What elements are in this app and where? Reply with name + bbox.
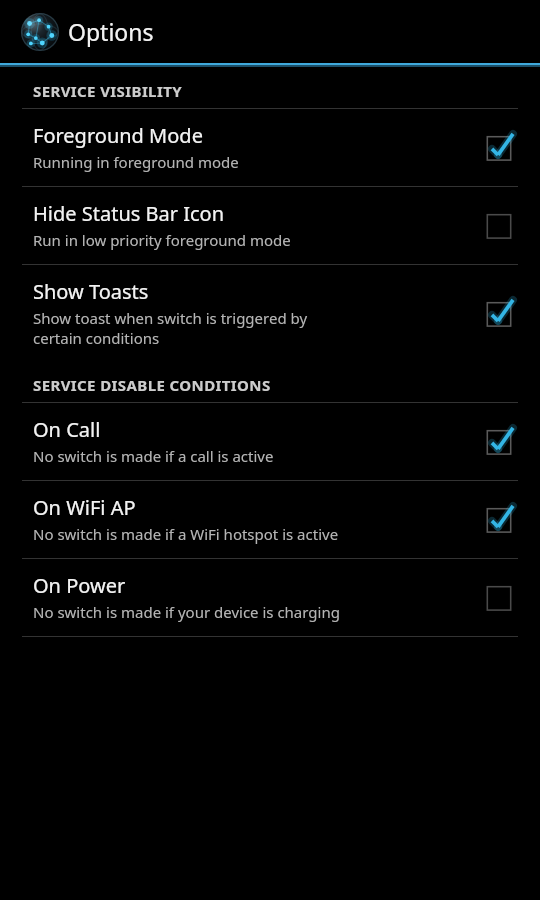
staticText: Hide Status Bar Icon	[33, 200, 225, 227]
staticText: Foreground Mode	[33, 122, 203, 149]
button[interactable]: Hide Status Bar Icon	[0, 187, 540, 264]
button[interactable]: Checked	[482, 130, 516, 164]
staticText: No switch is made if your device is char…	[33, 602, 340, 622]
staticText: On Call	[33, 416, 101, 443]
button[interactable]: Unchecked	[482, 580, 516, 614]
button[interactable]: Checked	[482, 296, 516, 330]
staticText: Options	[68, 16, 154, 47]
staticText: On WiFi AP	[33, 494, 136, 521]
button[interactable]: Show Toasts	[0, 265, 540, 362]
staticText: No switch is made if a WiFi hotspot is a…	[33, 524, 339, 544]
staticText: Run in low priority foreground mode	[33, 230, 291, 250]
button[interactable]: On Call	[0, 403, 540, 480]
staticText: SERVICE VISIBILITY	[33, 81, 540, 101]
staticText: SERVICE DISABLE CONDITIONS	[33, 375, 540, 395]
button[interactable]: On Power	[0, 559, 540, 636]
staticText: Show Toasts	[33, 278, 149, 305]
staticText: Running in foreground mode	[33, 152, 239, 172]
button[interactable]: Checked	[482, 502, 516, 536]
button[interactable]: Foreground Mode	[0, 109, 540, 186]
staticText: On Power	[33, 572, 126, 599]
staticText: No switch is made if a call is active	[33, 446, 274, 466]
staticText: certain conditions	[33, 328, 160, 348]
staticText: Show toast when switch is triggered by	[33, 308, 308, 328]
button[interactable]: Unchecked	[482, 208, 516, 242]
button[interactable]: Checked	[482, 424, 516, 458]
button[interactable]: On WiFi AP	[0, 481, 540, 558]
